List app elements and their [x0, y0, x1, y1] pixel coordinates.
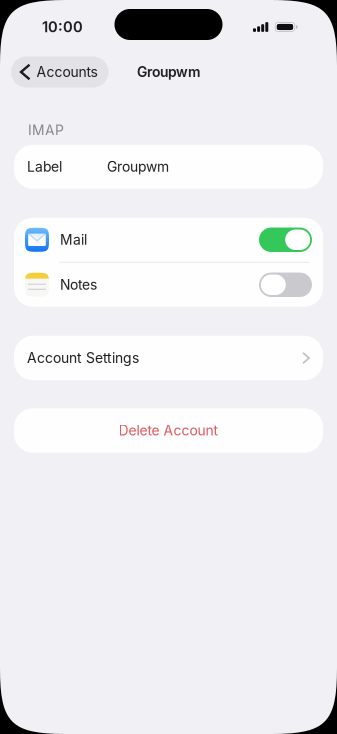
staticText: Delete Account: [118, 422, 218, 439]
staticText: Accounts: [36, 64, 97, 80]
staticText: 10:00: [42, 18, 83, 36]
staticText: Groupwm: [137, 64, 200, 80]
staticText: Groupwm: [107, 158, 169, 175]
staticText: Notes: [60, 276, 97, 293]
staticText: Account Settings: [27, 350, 139, 366]
button[interactable]: Delete Account: [14, 408, 323, 453]
staticText: IMAP: [28, 122, 64, 139]
button[interactable]: Accounts: [11, 56, 108, 87]
staticText: Label: [27, 158, 62, 175]
button[interactable]: Account Settings: [14, 336, 323, 380]
staticText: Mail: [60, 231, 87, 248]
button[interactable]: Notes: [14, 263, 323, 307]
button[interactable]: Mail: [14, 218, 323, 262]
